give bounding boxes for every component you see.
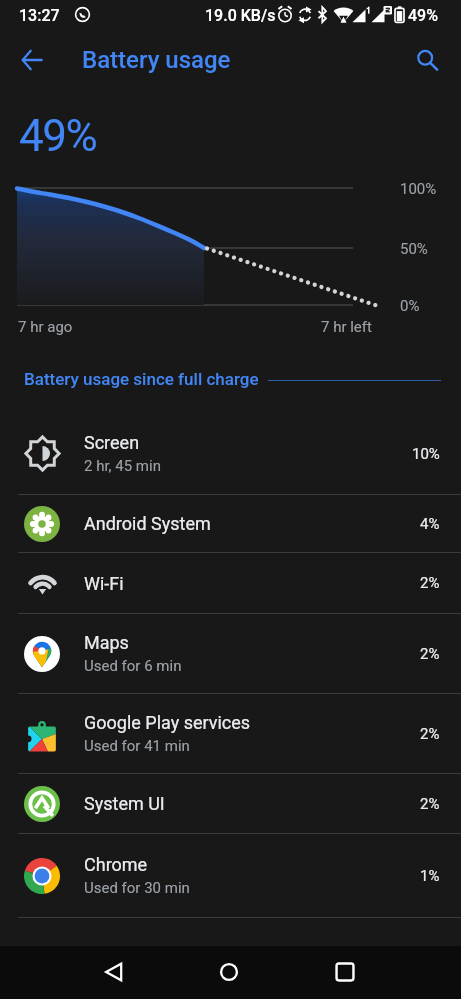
staticText: 7 hr ago <box>18 318 73 336</box>
button[interactable]: Chrome <box>0 834 461 918</box>
staticText: 10% <box>412 445 440 463</box>
staticText: 19.0 KB/s <box>205 6 276 25</box>
staticText: 1% <box>420 867 440 885</box>
button[interactable]: System UI <box>0 774 461 834</box>
staticText: Maps <box>84 632 129 653</box>
staticText: Used for 30 min <box>84 879 190 897</box>
staticText: 100% <box>400 180 437 198</box>
staticText: Screen <box>84 432 140 453</box>
staticText: 2% <box>420 725 440 743</box>
staticText: Battery usage <box>82 46 231 74</box>
button[interactable]: Android System <box>0 495 461 553</box>
staticText: 4% <box>420 515 440 533</box>
button[interactable]: Maps <box>0 614 461 694</box>
staticText: Chrome <box>84 854 148 875</box>
button[interactable]: Recents <box>321 948 369 996</box>
staticText: 50% <box>400 240 428 258</box>
button[interactable]: Google Play services <box>0 694 461 774</box>
button[interactable]: Search <box>403 36 451 84</box>
staticText: Used for 41 min <box>84 737 190 755</box>
staticText: Battery usage since full charge <box>24 369 259 389</box>
staticText: System UI <box>84 793 165 814</box>
button[interactable]: Screen <box>0 413 461 495</box>
staticText: Wi-Fi <box>84 573 124 594</box>
button[interactable]: Wi-Fi <box>0 553 461 614</box>
staticText: 2 hr, 45 min <box>84 457 161 475</box>
staticText: 0% <box>400 297 420 315</box>
staticText: Android System <box>84 513 211 534</box>
staticText: 49% <box>408 6 438 25</box>
staticText: 13:27 <box>19 6 60 25</box>
staticText: 49% <box>19 110 97 162</box>
staticText: Used for 6 min <box>84 657 182 675</box>
staticText: 2% <box>420 574 440 592</box>
staticText: 2% <box>420 795 440 813</box>
staticText: Google Play services <box>84 712 251 733</box>
button[interactable]: Back <box>8 36 56 84</box>
staticText: 7 hr left <box>321 318 372 336</box>
button[interactable]: Back <box>90 948 138 996</box>
button[interactable]: Home <box>205 948 253 996</box>
staticText: 2% <box>420 645 440 663</box>
